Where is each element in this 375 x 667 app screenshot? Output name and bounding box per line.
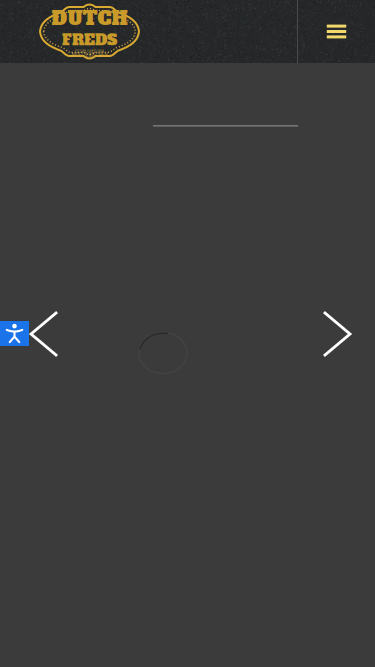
button[interactable]: Menu (298, 0, 375, 63)
button[interactable]: Dutch Freds home (0, 7, 139, 56)
staticText: DUTCH (51, 5, 127, 31)
button[interactable]: Previous (15, 299, 72, 369)
button[interactable]: Accessibility options (0, 321, 29, 346)
button[interactable]: Next (309, 299, 366, 369)
staticText: ESTABLISHED 2014 (75, 49, 104, 53)
staticText: FREDS (62, 29, 117, 50)
staticText: BAR (86, 56, 92, 60)
staticText: NIGEL'S KITCHEN (71, 52, 107, 57)
